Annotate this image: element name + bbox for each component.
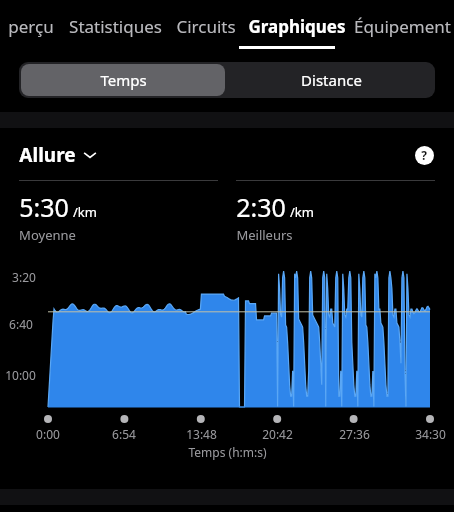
- button[interactable]: Statistiques: [62, 0, 168, 52]
- staticText: Temps (h:m:s): [188, 444, 267, 460]
- staticText: 6:40: [9, 316, 33, 332]
- button[interactable]: perçu: [0, 0, 62, 52]
- staticText: /km: [73, 203, 97, 221]
- button[interactable]: Circuits: [168, 0, 244, 52]
- button[interactable]: Aide: [413, 144, 435, 166]
- staticText: Meilleurs: [236, 226, 293, 244]
- staticText: Distance: [301, 70, 362, 90]
- staticText: Temps: [100, 70, 147, 90]
- staticText: Graphiques: [248, 15, 346, 38]
- button[interactable]: Équipement: [350, 0, 454, 52]
- staticText: 3:20: [12, 269, 36, 285]
- staticText: Moyenne: [19, 226, 76, 244]
- staticText: 2:30: [236, 190, 286, 224]
- button[interactable]: Temps: [21, 64, 225, 96]
- staticText: 34:30: [415, 426, 446, 442]
- staticText: perçu: [8, 15, 54, 38]
- staticText: Statistiques: [69, 15, 162, 38]
- staticText: Équipement: [354, 15, 451, 38]
- staticText: Circuits: [176, 15, 236, 38]
- button[interactable]: Distance: [227, 62, 435, 98]
- button[interactable]: Allure: [19, 142, 97, 168]
- staticText: 27:36: [339, 426, 370, 442]
- staticText: /km: [290, 203, 314, 221]
- staticText: 0:00: [36, 426, 60, 442]
- staticText: ?: [421, 147, 427, 163]
- staticText: 5:30: [19, 190, 69, 224]
- button[interactable]: Graphiques: [244, 0, 350, 52]
- button[interactable]: 5:30: [19, 180, 218, 244]
- staticText: 6:54: [112, 426, 136, 442]
- staticText: Allure: [19, 142, 76, 168]
- staticText: 13:48: [186, 426, 217, 442]
- staticText: 20:42: [262, 426, 293, 442]
- staticText: 10:00: [5, 367, 36, 383]
- button[interactable]: 2:30: [236, 180, 435, 244]
